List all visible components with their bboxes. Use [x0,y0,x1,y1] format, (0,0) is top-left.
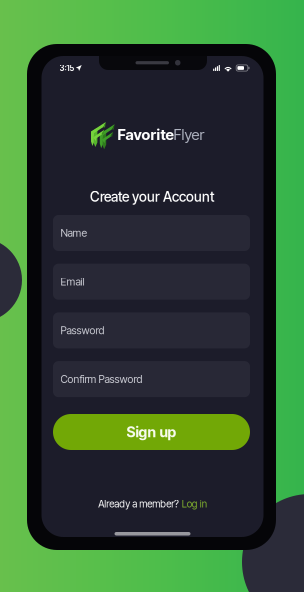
staticText: 3:15 [59,63,74,73]
button[interactable]: Password [53,312,250,348]
staticText: Confirm Password [60,373,142,385]
staticText: Name [60,227,87,239]
staticText: Password [60,324,104,337]
staticText: Flyer [173,125,204,144]
button[interactable]: Email [53,264,250,300]
staticText: Create your Account [90,188,215,205]
button[interactable]: Sign up [53,414,250,450]
button[interactable]: Already a member? [41,498,263,510]
button[interactable]: Confirm Password [53,361,250,397]
staticText: Log in [182,498,207,510]
staticText: Already a member? [98,498,179,510]
staticText: Email [60,275,84,288]
staticText: Sign up [126,423,176,441]
staticText: Favorite [117,125,173,144]
button[interactable]: Name [53,215,250,251]
